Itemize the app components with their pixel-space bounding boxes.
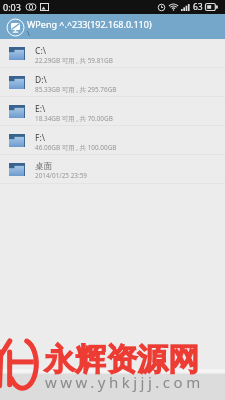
- staticText: 85.33GB 可用 , 共 295.76GB: [35, 85, 117, 94]
- other: Server: [6, 18, 25, 37]
- staticText: E:\: [35, 103, 46, 115]
- staticText: 永辉资源网: [44, 340, 199, 379]
- button[interactable]: D:\: [0, 68, 225, 97]
- staticText: 63: [193, 1, 203, 13]
- staticText: D:\: [35, 74, 47, 86]
- button[interactable]: E:\: [0, 97, 225, 126]
- staticText: 46.06GB 可用 , 共 100.00GB: [35, 143, 117, 152]
- staticText: 0:03: [3, 1, 21, 13]
- staticText: www.yhkjjj.com: [45, 372, 204, 392]
- staticText: C:\: [35, 45, 46, 57]
- button[interactable]: 桌面: [0, 155, 225, 184]
- staticText: 桌面: [35, 161, 52, 172]
- button[interactable]: C:\: [0, 39, 225, 68]
- button[interactable]: Server: [0, 14, 225, 39]
- button[interactable]: F:\: [0, 126, 225, 155]
- staticText: 2014/01/25 23:59: [35, 171, 87, 180]
- staticText: WPeng ^.^233(192.168.0.110): [27, 18, 152, 30]
- staticText: \: [27, 28, 30, 38]
- staticText: 22.29GB 可用 , 共 59.81GB: [35, 56, 113, 65]
- staticText: 18.34GB 可用 , 共 70.00GB: [35, 114, 113, 123]
- staticText: F:\: [35, 132, 46, 144]
